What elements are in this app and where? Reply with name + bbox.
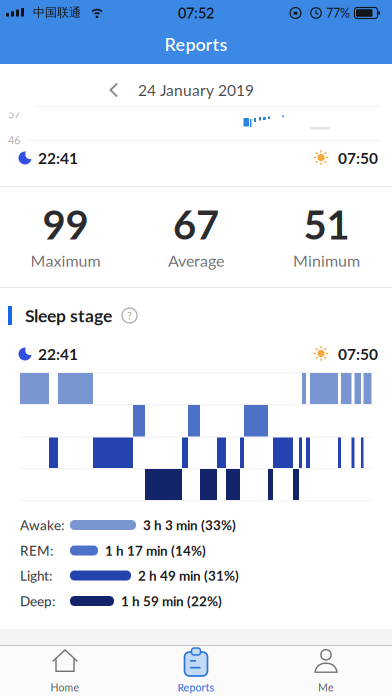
button[interactable] <box>108 82 120 98</box>
staticText: 77% <box>326 5 350 20</box>
staticText: Reports <box>164 33 227 55</box>
staticText: Average <box>168 251 224 270</box>
button[interactable]: Home <box>5 647 125 696</box>
staticText: Me <box>318 681 334 694</box>
staticText: 67 <box>173 200 219 248</box>
staticText: 46 <box>8 133 20 147</box>
staticText: 51 <box>303 200 349 248</box>
staticText: Deep: <box>20 593 55 609</box>
staticText: REM: <box>20 542 53 559</box>
staticText: Light: <box>20 567 52 584</box>
staticText: Reports <box>177 681 214 694</box>
staticText: 24 January 2019 <box>138 81 254 99</box>
staticText: 2 h 49 min (31%) <box>138 567 239 584</box>
staticText: 中国联通 <box>33 5 81 20</box>
staticText: 07:50 <box>338 345 378 363</box>
staticText: 22:41 <box>38 149 78 167</box>
staticText: 07:50 <box>338 149 378 167</box>
staticText: 99 <box>42 200 88 248</box>
button[interactable]: ? <box>120 306 138 324</box>
staticText: Minimum <box>293 251 360 270</box>
staticText: Awake: <box>20 517 64 533</box>
staticText: 22:41 <box>38 345 78 363</box>
staticText: Sleep stage <box>25 305 112 326</box>
staticText: 3 h 3 min (33%) <box>143 517 236 533</box>
button[interactable]: Me <box>266 647 386 696</box>
staticText: ? <box>127 309 132 322</box>
staticText: Maximum <box>30 251 100 270</box>
staticText: 57 <box>8 107 20 121</box>
button[interactable]: Reports <box>136 647 256 696</box>
staticText: 07:52 <box>178 4 214 22</box>
staticText: 1 h 17 min (14%) <box>105 542 206 559</box>
staticText: Home <box>50 681 79 694</box>
staticText: 1 h 59 min (22%) <box>121 593 222 609</box>
